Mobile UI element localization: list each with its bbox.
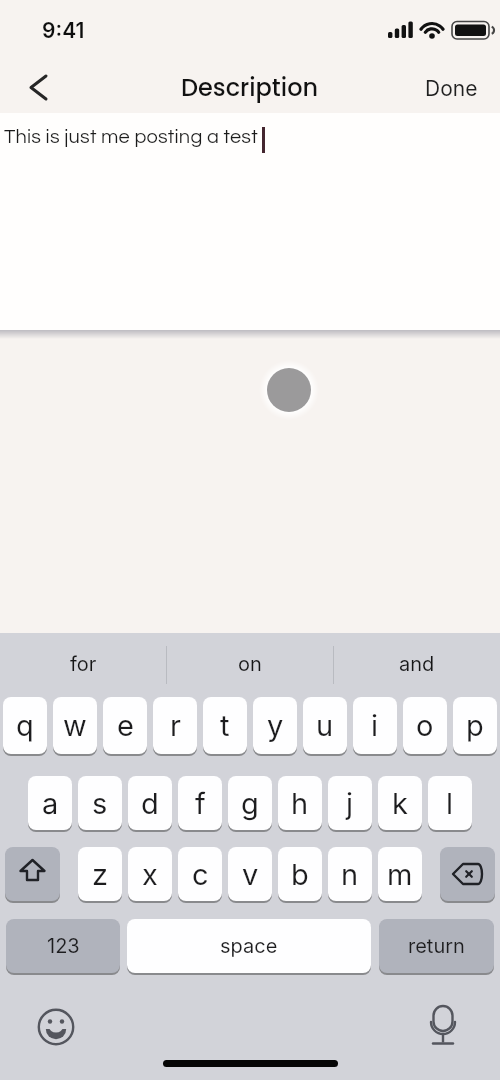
button[interactable]: u [303, 697, 347, 754]
staticText: j [346, 786, 354, 821]
staticText: 123 [47, 934, 80, 958]
button[interactable]: y [253, 697, 297, 754]
staticText: e [117, 708, 134, 743]
button[interactable]: on [167, 638, 333, 690]
button[interactable]: for [0, 638, 166, 690]
staticText: t [220, 708, 230, 743]
button[interactable]: p [453, 697, 497, 754]
button[interactable] [20, 70, 56, 106]
staticText: c [192, 857, 209, 892]
staticText: f [195, 786, 206, 821]
button[interactable]: s [78, 776, 122, 830]
staticText: r [170, 708, 181, 743]
staticText: w [63, 708, 87, 743]
button[interactable]: k [378, 776, 422, 830]
staticText: u [316, 708, 334, 743]
staticText: g [241, 786, 259, 821]
staticText: z [92, 857, 109, 892]
staticText: space [220, 934, 278, 958]
button[interactable]: c [178, 847, 222, 901]
staticText: Done [425, 76, 478, 101]
button[interactable]: f [178, 776, 222, 830]
button[interactable]: i [353, 697, 397, 754]
staticText: q [16, 708, 34, 743]
button[interactable]: t [203, 697, 247, 754]
button[interactable] [31, 1002, 81, 1052]
staticText: 9:41 [42, 18, 85, 43]
button[interactable]: b [278, 847, 322, 901]
button[interactable]: e [103, 697, 147, 754]
staticText: s [92, 786, 108, 821]
button[interactable]: x [128, 847, 172, 901]
staticText: b [291, 857, 309, 892]
button[interactable]: v [228, 847, 272, 901]
button[interactable]: m [378, 847, 422, 901]
button[interactable]: g [228, 776, 272, 830]
button[interactable] [418, 1000, 468, 1050]
staticText: p [466, 708, 484, 743]
button[interactable]: return [379, 919, 494, 973]
staticText: a [42, 786, 59, 821]
staticText: v [242, 857, 259, 892]
button[interactable]: j [328, 776, 372, 830]
staticText: k [392, 786, 408, 821]
button[interactable]: d [128, 776, 172, 830]
button[interactable]: a [28, 776, 72, 830]
button[interactable]: and [334, 638, 500, 690]
button[interactable]: o [403, 697, 447, 754]
staticText: m [387, 857, 413, 892]
button[interactable]: l [428, 776, 472, 830]
button[interactable]: h [278, 776, 322, 830]
button[interactable] [440, 847, 495, 901]
button[interactable] [5, 847, 60, 901]
button[interactable]: z [78, 847, 122, 901]
staticText: This is just me posting a test [4, 127, 258, 148]
staticText: i [371, 708, 379, 743]
staticText: l [446, 786, 454, 821]
staticText: n [341, 857, 359, 892]
button[interactable]: r [153, 697, 197, 754]
staticText: y [267, 708, 284, 743]
button[interactable]: Done [420, 70, 482, 106]
staticText: h [291, 786, 309, 821]
staticText: return [408, 934, 465, 958]
staticText: on [238, 652, 262, 676]
button[interactable]: q [3, 697, 47, 754]
button[interactable]: 123 [6, 919, 120, 973]
button[interactable]: space [127, 919, 371, 973]
staticText: and [399, 652, 435, 676]
staticText: for [70, 652, 97, 676]
staticText: Description [181, 71, 319, 105]
button[interactable]: w [53, 697, 97, 754]
staticText: d [141, 786, 159, 821]
staticText: o [416, 708, 434, 743]
staticText: x [142, 857, 158, 892]
button[interactable]: n [328, 847, 372, 901]
